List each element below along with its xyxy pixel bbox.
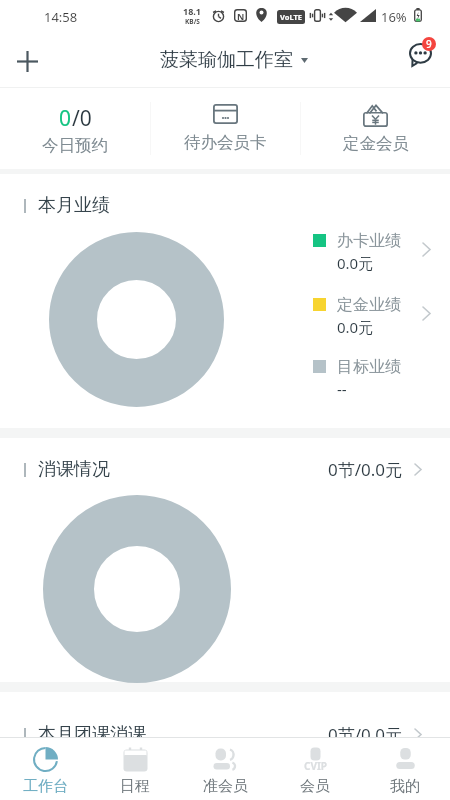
staticText: 18.1 <box>183 5 201 17</box>
button[interactable]: Messages <box>398 35 450 87</box>
staticText: 目标业绩 <box>337 357 401 377</box>
staticText: 定金业绩 <box>337 295 401 315</box>
button[interactable]: 本月团课消课 <box>0 714 450 754</box>
button[interactable]: 工作台 <box>0 738 90 800</box>
staticText: 菠菜瑜伽工作室 <box>160 48 293 72</box>
button[interactable]: 目标业绩 <box>313 357 431 399</box>
staticText: 本月业绩 <box>38 194 110 217</box>
staticText: 本月团课消课 <box>38 723 146 746</box>
button[interactable]: 办卡业绩 <box>313 231 431 273</box>
button[interactable]: CVIP <box>270 738 360 800</box>
staticText: /0 <box>72 104 92 133</box>
staticText: 待办会员卡 <box>184 132 267 153</box>
button[interactable]: Add <box>0 34 54 88</box>
staticText: 14:58 <box>44 8 78 26</box>
staticText: 0.0元 <box>337 317 374 337</box>
button[interactable]: 待办会员卡 <box>151 104 300 153</box>
staticText: 会员 <box>300 777 330 796</box>
staticText: 9 <box>426 37 432 51</box>
staticText: 16% <box>381 8 407 26</box>
staticText: 日程 <box>120 777 150 796</box>
button[interactable]: 日程 <box>90 738 180 800</box>
staticText: -- <box>337 379 347 399</box>
button[interactable]: 准会员 <box>180 738 270 800</box>
staticText: N <box>237 10 245 22</box>
staticText: 0 <box>59 104 72 133</box>
staticText: 办卡业绩 <box>337 231 401 251</box>
staticText: 工作台 <box>23 777 68 796</box>
staticText: 消课情况 <box>38 458 110 481</box>
staticText: 0节/0.0元 <box>328 458 403 481</box>
staticText: 准会员 <box>203 777 248 796</box>
button[interactable]: 我的 <box>360 738 450 800</box>
staticText: 我的 <box>390 777 420 796</box>
button[interactable]: 定金业绩 <box>313 295 431 337</box>
button[interactable]: 0 <box>0 101 150 156</box>
staticText: KB/S <box>185 17 200 26</box>
staticText: VoLTE <box>280 12 302 22</box>
staticText: CVIP <box>304 759 328 773</box>
staticText: 0.0元 <box>337 253 374 273</box>
staticText: 定金会员 <box>343 133 409 154</box>
button[interactable]: 定金会员 <box>301 104 450 154</box>
button[interactable]: 消课情况 <box>0 449 450 489</box>
staticText: 0节/0.0元 <box>328 723 403 746</box>
button[interactable]: 菠菜瑜伽工作室 <box>154 43 314 79</box>
staticText: 今日预约 <box>42 135 108 156</box>
